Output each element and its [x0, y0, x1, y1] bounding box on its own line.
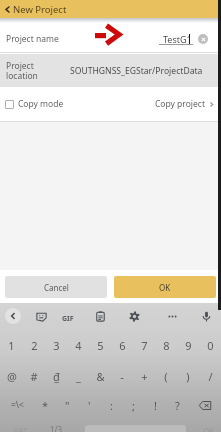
button[interactable]: ! [144, 390, 166, 420]
button[interactable]: ; [122, 390, 144, 420]
button[interactable]: 3 [45, 330, 67, 360]
staticText: 6 [119, 338, 126, 353]
staticText: ; [132, 398, 135, 413]
button[interactable]: Clipboard [94, 310, 107, 323]
button[interactable]: ( [155, 361, 177, 391]
button[interactable]: Project location [0, 54, 221, 87]
button[interactable]: Copy project [149, 87, 221, 121]
staticText: SOUTHGNSS_EGStar/ProjectData [70, 65, 203, 77]
button[interactable]: # [23, 361, 45, 391]
staticText: 8 [163, 338, 170, 353]
staticText: OK [159, 282, 171, 293]
staticText: 4 [75, 338, 82, 353]
staticText: 2 [31, 338, 38, 353]
staticText: 1 [8, 338, 15, 353]
staticText: Project location [6, 60, 38, 82]
button[interactable]: Project name [0, 23, 221, 53]
button[interactable]: 4 [67, 330, 89, 360]
staticText: / [208, 369, 213, 384]
button[interactable]: 7 [133, 330, 155, 360]
staticText: ? [175, 398, 180, 413]
button[interactable]: New Project [0, 0, 221, 18]
staticText: - [120, 369, 124, 384]
button[interactable]: ₫ [45, 361, 67, 391]
button[interactable]: ' [78, 390, 100, 420]
button[interactable]: More options [166, 310, 179, 323]
staticText: TestG1 [163, 33, 192, 45]
staticText: Cancel [44, 282, 69, 293]
staticText: # [30, 369, 38, 384]
staticText: 9 [185, 338, 192, 353]
button[interactable]: " [56, 390, 78, 420]
button[interactable]: + [133, 361, 155, 391]
staticText: + [141, 369, 148, 384]
button[interactable]: 2 [23, 330, 45, 360]
button[interactable]: 1/3 [40, 420, 72, 432]
staticText: 0 [207, 338, 214, 353]
button[interactable]: ? [166, 390, 188, 420]
staticText: @ [7, 369, 17, 384]
staticText: =\< [11, 399, 24, 411]
staticText: New Project [13, 3, 67, 16]
button[interactable]: 0 [199, 330, 221, 360]
button[interactable]: @ [0, 361, 23, 391]
button[interactable]: 5 [89, 330, 111, 360]
staticText: 3 [53, 338, 60, 353]
button[interactable]: OK [199, 420, 219, 432]
button[interactable]: Stickers [35, 310, 48, 323]
button[interactable]: ) [177, 361, 199, 391]
button[interactable]: * [34, 390, 56, 420]
button[interactable]: Copy mode [0, 87, 70, 121]
staticText: ) [186, 369, 190, 384]
button[interactable]: 9 [177, 330, 199, 360]
button[interactable]: GIF [59, 310, 77, 328]
button[interactable]: Voice input [200, 310, 213, 323]
staticText: 7 [141, 338, 148, 353]
button[interactable]: 8 [155, 330, 177, 360]
staticText: 1/3 [50, 424, 63, 432]
button[interactable]: 6 [111, 330, 133, 360]
staticText: Copy project [155, 98, 205, 110]
staticText: " [65, 398, 70, 413]
button[interactable]: Clear text [198, 34, 208, 44]
button[interactable]: - [111, 361, 133, 391]
button[interactable]: 1 [0, 330, 23, 360]
staticText: Copy mode [18, 98, 64, 110]
staticText: ! [154, 398, 157, 413]
staticText: OK [203, 426, 215, 432]
button[interactable]: Settings [128, 310, 141, 323]
button[interactable]: Backspace [188, 390, 221, 420]
staticText: ' [88, 398, 91, 413]
button[interactable]: & [89, 361, 111, 391]
staticText: : [110, 398, 113, 413]
button[interactable]: _ [67, 361, 89, 391]
staticText: Project name [6, 33, 59, 45]
button[interactable]: =\< [0, 390, 34, 420]
staticText: * [42, 398, 49, 413]
button[interactable]: Cancel [5, 276, 107, 298]
staticText: 5 [97, 338, 104, 353]
staticText: _ [76, 369, 81, 384]
button[interactable]: / [199, 361, 221, 391]
staticText: ABC [13, 426, 29, 432]
button[interactable]: Back [5, 308, 21, 324]
staticText: GIF [62, 314, 74, 324]
button[interactable]: : [100, 390, 122, 420]
staticText: ( [164, 369, 168, 384]
staticText: & [96, 369, 105, 384]
button[interactable]: OK [114, 276, 216, 298]
staticText: ₫ [53, 369, 60, 384]
